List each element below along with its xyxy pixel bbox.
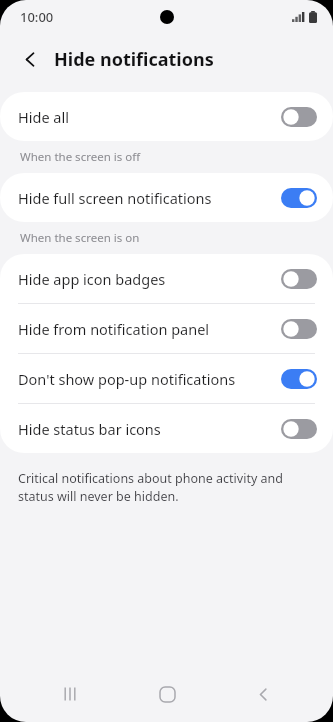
staticText: 10:00 <box>20 8 54 26</box>
button[interactable]: Hide status bar icons <box>0 404 333 453</box>
button[interactable]: Recents <box>43 667 97 721</box>
staticText: When the screen is off <box>20 149 141 165</box>
button[interactable]: Don't show pop-up notifications <box>0 354 333 403</box>
button[interactable]: Hide app icon badges <box>0 254 333 303</box>
staticText: Don't show pop-up notifications <box>18 369 281 389</box>
button[interactable]: Hide all <box>0 92 333 141</box>
button[interactable]: Back <box>236 667 290 721</box>
staticText: Hide notifications <box>54 47 214 72</box>
staticText: When the screen is on <box>20 230 140 246</box>
staticText: Hide full screen notifications <box>18 188 281 208</box>
staticText: Critical notifications about phone activ… <box>18 470 315 505</box>
staticText: Hide status bar icons <box>18 419 281 439</box>
staticText: Hide all <box>18 107 281 127</box>
staticText: Hide app icon badges <box>18 269 281 289</box>
staticText: Hide from notification panel <box>18 319 281 339</box>
button[interactable]: Hide full screen notifications <box>0 173 333 222</box>
button[interactable]: Hide from notification panel <box>0 304 333 353</box>
button[interactable]: Home <box>140 667 194 721</box>
button[interactable]: Back <box>12 41 48 77</box>
